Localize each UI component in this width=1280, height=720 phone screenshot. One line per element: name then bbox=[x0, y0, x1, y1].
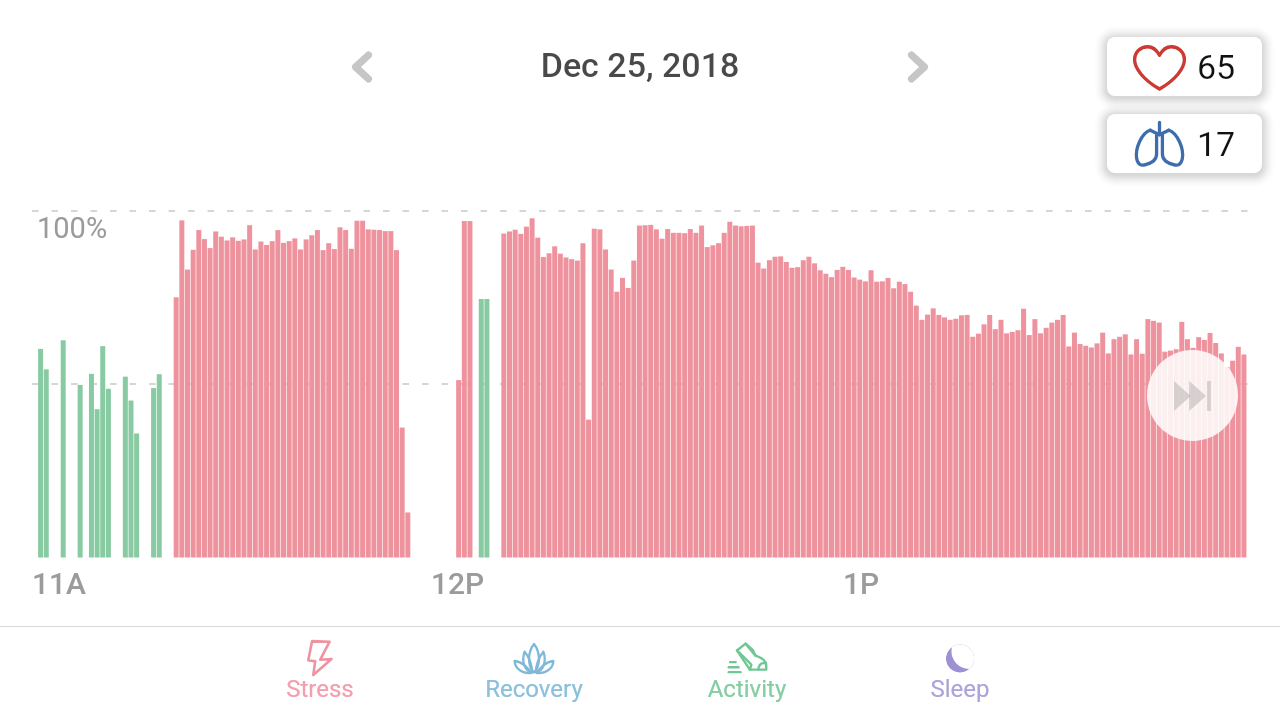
button[interactable]: Stress bbox=[213, 627, 427, 720]
staticText: 17 bbox=[1197, 124, 1236, 164]
button[interactable]: Next day bbox=[886, 35, 950, 99]
staticText: Stress bbox=[213, 675, 427, 703]
button[interactable]: Recovery bbox=[427, 627, 641, 720]
button[interactable]: 17 bbox=[1107, 114, 1262, 173]
staticText: Dec 25, 2018 bbox=[0, 45, 1280, 85]
button[interactable]: 65 bbox=[1107, 37, 1262, 96]
button[interactable]: Activity bbox=[640, 627, 854, 720]
staticText: Recovery bbox=[427, 675, 641, 703]
staticText: Sleep bbox=[853, 675, 1067, 703]
button[interactable]: Previous day bbox=[330, 35, 394, 99]
staticText: 11A bbox=[32, 566, 86, 601]
button[interactable]: Sleep bbox=[853, 627, 1067, 720]
staticText: 1P bbox=[843, 566, 880, 601]
button[interactable]: Skip to now bbox=[1147, 350, 1238, 441]
staticText: Activity bbox=[640, 675, 854, 703]
staticText: 100% bbox=[37, 211, 108, 245]
staticText: 12P bbox=[431, 566, 485, 601]
staticText: 65 bbox=[1197, 47, 1236, 87]
